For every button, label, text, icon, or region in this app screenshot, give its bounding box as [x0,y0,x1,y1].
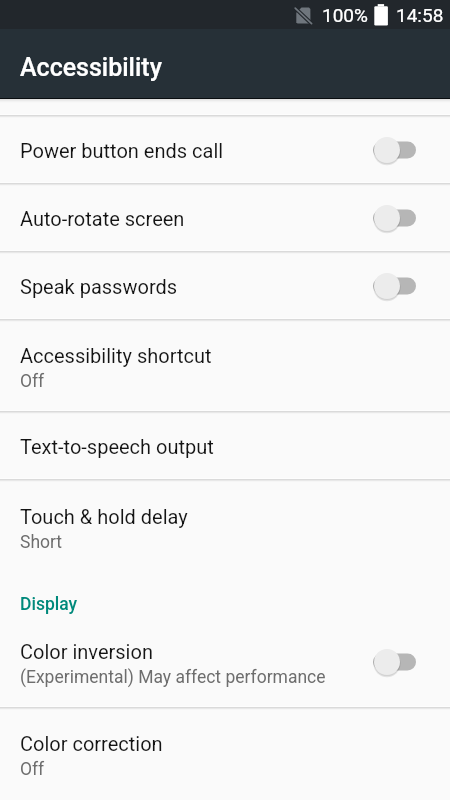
other: No SIM card [293,3,314,24]
staticText: Accessibility [20,53,162,82]
staticText: Color inversion [20,640,153,663]
staticText: Off [20,759,45,780]
staticText: Display [20,594,78,615]
staticText: Text-to-speech output [20,435,214,458]
button[interactable]: Toggle [373,205,416,231]
staticText: Accessibility shortcut [20,344,212,367]
button[interactable]: Auto-rotate screen [0,184,450,251]
button[interactable]: Accessibility shortcut [0,320,450,411]
staticText: Auto-rotate screen [20,207,185,230]
staticText: 100% [322,4,368,26]
staticText: Color correction [20,732,163,755]
button[interactable]: Speak passwords [0,252,450,319]
button[interactable]: Toggle [373,649,416,675]
button[interactable]: Text-to-speech output [0,412,450,479]
button[interactable]: Color inversion [0,616,450,707]
button[interactable]: Color correction [0,708,450,799]
staticText: Speak passwords [20,275,178,298]
staticText: Power button ends call [20,139,224,162]
button[interactable]: Toggle [373,137,416,163]
staticText: Short [20,532,63,553]
staticText: 14:58 [396,4,444,26]
staticText: Touch & hold delay [20,505,188,528]
button[interactable]: Touch & hold delay [0,480,450,572]
staticText: (Experimental) May affect performance [20,667,326,688]
button[interactable]: Toggle [373,273,416,299]
button[interactable]: Power button ends call [0,116,450,183]
staticText: Off [20,371,45,392]
